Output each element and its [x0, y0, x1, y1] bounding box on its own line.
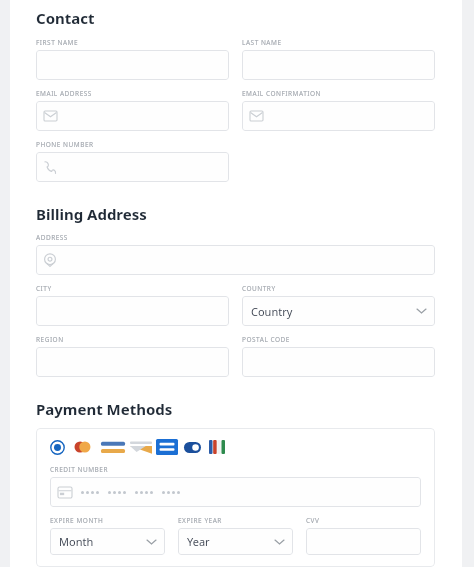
button[interactable]	[242, 50, 435, 80]
staticText: PHONE NUMBER	[36, 140, 94, 149]
staticText: LAST NAME	[242, 38, 282, 47]
staticText: CITY	[36, 284, 52, 293]
staticText: Country	[251, 304, 417, 319]
button[interactable]: Month	[50, 528, 165, 555]
button[interactable]	[36, 296, 229, 326]
button[interactable]	[306, 528, 421, 555]
staticText: POSTAL CODE	[242, 335, 290, 344]
button[interactable]	[242, 347, 435, 377]
staticText: FIRST NAME	[36, 38, 79, 47]
staticText: EXPIRE YEAR	[178, 516, 222, 525]
button[interactable]	[36, 347, 229, 377]
staticText: EMAIL ADDRESS	[36, 89, 92, 98]
staticText: COUNTRY	[242, 284, 276, 293]
button[interactable]	[36, 101, 229, 131]
button[interactable]: Country	[242, 296, 435, 326]
staticText: Contact	[36, 8, 95, 28]
button[interactable]: Select credit card	[50, 440, 65, 455]
staticText: CREDIT NUMBER	[50, 465, 108, 474]
staticText: ADDRESS	[36, 233, 68, 242]
staticText: Month	[59, 534, 147, 549]
button[interactable]: Diners Club	[184, 442, 201, 453]
button[interactable]: Discover	[130, 440, 152, 455]
button[interactable]: Visa	[101, 440, 125, 455]
button[interactable]	[242, 101, 435, 131]
button[interactable]: JCB	[209, 440, 225, 454]
staticText: EXPIRE MONTH	[50, 516, 104, 525]
staticText: Billing Address	[36, 204, 147, 224]
button[interactable]	[50, 477, 421, 507]
button[interactable]	[36, 152, 229, 182]
staticText: Payment Methods	[36, 399, 173, 419]
staticText: Year	[187, 534, 275, 549]
button[interactable]: American Express	[156, 439, 178, 455]
staticText: CVV	[306, 516, 320, 525]
button[interactable]	[36, 245, 435, 275]
staticText: REGION	[36, 335, 64, 344]
staticText: EMAIL CONFIRMATION	[242, 89, 322, 98]
button[interactable]: Mastercard	[74, 440, 95, 454]
button[interactable]: Year	[178, 528, 293, 555]
button[interactable]	[36, 50, 229, 80]
